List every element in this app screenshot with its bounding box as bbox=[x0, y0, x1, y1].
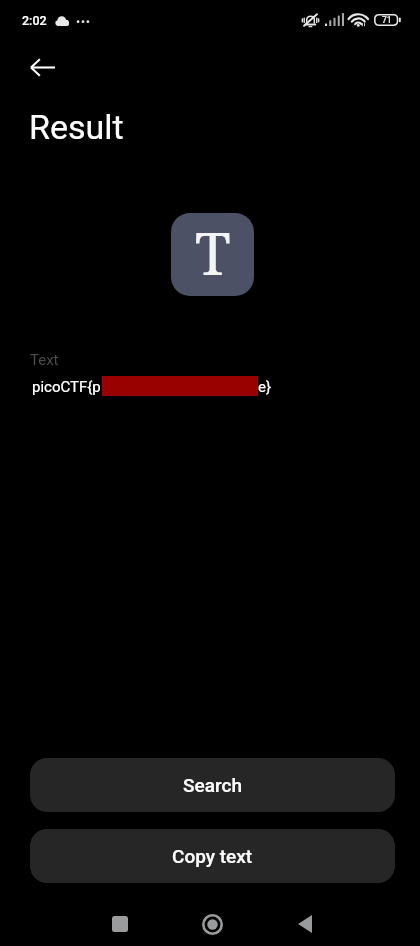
button[interactable]: Back bbox=[281, 900, 329, 946]
staticText: e} bbox=[258, 378, 272, 396]
button[interactable]: Copy text bbox=[30, 829, 395, 883]
staticText: 2:02 bbox=[22, 13, 47, 28]
button[interactable]: Navigate up bbox=[18, 52, 66, 82]
staticText: Copy text bbox=[172, 845, 253, 867]
staticText: T bbox=[195, 213, 231, 292]
staticText: 71 bbox=[382, 15, 392, 25]
staticText: Text bbox=[30, 351, 59, 369]
button[interactable]: Home bbox=[188, 900, 236, 946]
button[interactable]: Search bbox=[30, 758, 395, 812]
staticText: Result bbox=[29, 107, 124, 147]
button[interactable]: Recent apps bbox=[96, 900, 144, 946]
staticText: Search bbox=[183, 774, 242, 796]
staticText: picoCTF{p bbox=[32, 378, 101, 396]
